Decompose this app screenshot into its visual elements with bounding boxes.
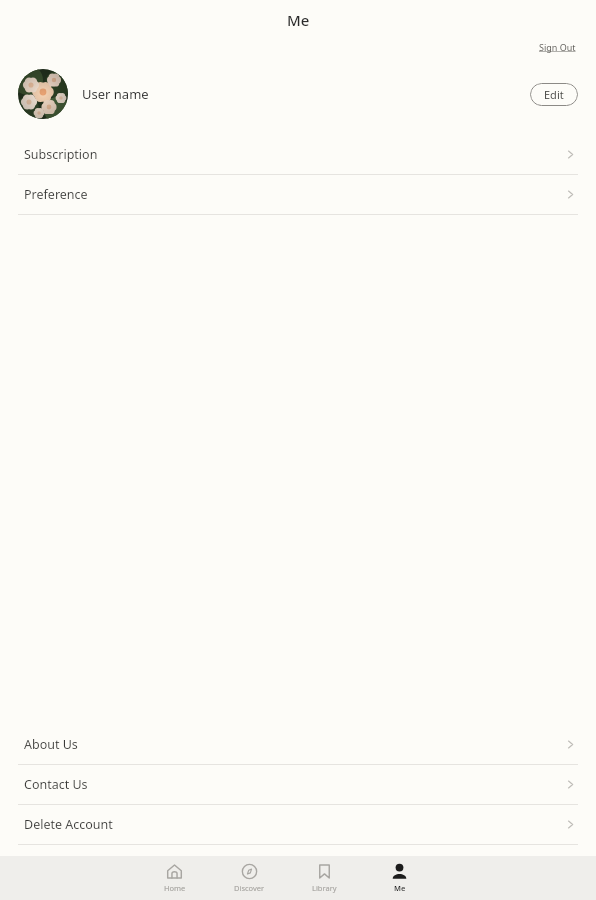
button[interactable]: Edit xyxy=(530,83,578,106)
button[interactable]: Preference xyxy=(0,175,596,215)
staticText: Me xyxy=(394,883,406,893)
staticText: Edit xyxy=(544,87,564,102)
staticText: Home xyxy=(164,883,186,893)
button[interactable]: Sign Out xyxy=(537,40,578,54)
button[interactable]: Me xyxy=(375,856,424,900)
staticText: Preference xyxy=(24,186,88,203)
button[interactable]: Delete Account xyxy=(0,805,596,845)
staticText: Me xyxy=(287,10,310,30)
staticText: Discover xyxy=(234,883,265,893)
button[interactable]: Profile photo xyxy=(18,69,68,119)
staticText: Delete Account xyxy=(24,816,113,833)
button[interactable]: Home xyxy=(150,856,199,900)
staticText: Library xyxy=(312,883,337,893)
button[interactable]: Subscription xyxy=(0,135,596,175)
button[interactable]: Contact Us xyxy=(0,765,596,805)
staticText: Contact Us xyxy=(24,776,88,793)
staticText: About Us xyxy=(24,736,78,753)
button[interactable]: About Us xyxy=(0,725,596,765)
button[interactable]: Discover xyxy=(225,856,274,900)
staticText: Subscription xyxy=(24,146,98,163)
staticText: User name xyxy=(82,85,149,103)
staticText: Sign Out xyxy=(539,41,576,53)
button[interactable]: Library xyxy=(300,856,349,900)
